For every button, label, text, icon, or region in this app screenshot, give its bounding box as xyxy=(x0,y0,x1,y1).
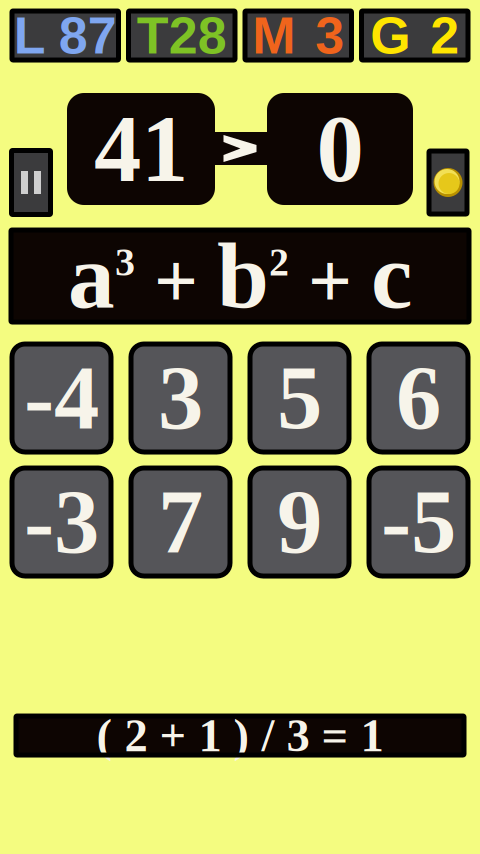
button[interactable]: M 3 xyxy=(245,11,351,60)
button[interactable]: Coins xyxy=(429,151,467,214)
staticText: 7 xyxy=(158,472,203,572)
button[interactable]: -4 xyxy=(12,344,111,452)
button[interactable]: G 2 xyxy=(361,11,468,60)
button[interactable]: L 87 xyxy=(12,11,118,60)
button[interactable]: -5 xyxy=(369,468,468,576)
button[interactable]: 7 xyxy=(131,468,230,576)
staticText: 0 xyxy=(316,97,363,201)
staticText: 41 xyxy=(94,97,188,201)
staticText: -5 xyxy=(381,472,456,572)
staticText: 9 xyxy=(277,472,322,572)
staticText: T28 xyxy=(137,6,227,65)
button[interactable]: 3 xyxy=(131,344,230,452)
staticText: 5 xyxy=(277,348,322,448)
button[interactable]: T28 xyxy=(128,11,235,60)
staticText: 3 xyxy=(158,348,203,448)
staticText: L 87 xyxy=(14,6,117,65)
staticText: a3 + b2 + c xyxy=(68,226,412,326)
staticText: 6 xyxy=(396,348,441,448)
button[interactable]: 9 xyxy=(250,468,349,576)
button[interactable]: -3 xyxy=(12,468,111,576)
button[interactable]: Pause xyxy=(11,150,50,214)
staticText: M 3 xyxy=(252,6,344,65)
staticText: -3 xyxy=(24,472,99,572)
button[interactable]: 6 xyxy=(369,344,468,452)
staticText: G 2 xyxy=(370,6,459,65)
button[interactable]: 5 xyxy=(250,344,349,452)
staticText: ( 2 + 1 ) / 3 = 1 xyxy=(96,710,383,761)
staticText: -4 xyxy=(24,348,99,448)
